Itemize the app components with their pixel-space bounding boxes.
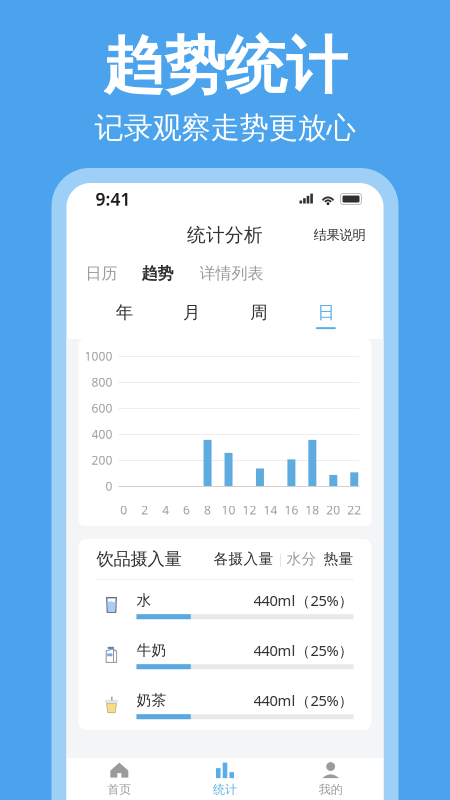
button[interactable]: 月 xyxy=(158,296,225,335)
button[interactable]: 详情列表 xyxy=(199,260,263,287)
staticText: 各摄入量 xyxy=(213,550,273,568)
staticText: 记录观察走势更放心 xyxy=(94,110,355,146)
button[interactable]: 周 xyxy=(225,296,292,335)
staticText: 饮品摄入量 xyxy=(96,548,181,570)
staticText: 2 xyxy=(141,502,148,518)
staticText: 月 xyxy=(183,302,200,323)
staticText: 日 xyxy=(317,302,334,323)
staticText: 4 xyxy=(162,502,169,518)
button[interactable]: 热量 xyxy=(323,550,353,568)
button[interactable]: 奶茶 xyxy=(96,680,353,730)
staticText: 6 xyxy=(183,502,190,518)
button[interactable]: 我的 xyxy=(278,755,383,800)
staticText: 400 xyxy=(91,426,112,442)
staticText: 日历 xyxy=(85,264,117,283)
staticText: 趋势统计 xyxy=(103,28,347,104)
button[interactable]: 水 xyxy=(96,580,353,630)
button[interactable]: 各摄入量 xyxy=(213,550,273,568)
button[interactable]: 首页 xyxy=(66,755,172,800)
staticText: 14 xyxy=(263,502,277,518)
button[interactable]: 水分 xyxy=(286,550,316,568)
button[interactable]: 年 xyxy=(90,296,158,335)
staticText: 16 xyxy=(284,502,298,518)
staticText: 0 xyxy=(120,502,127,518)
staticText: 18 xyxy=(305,502,319,518)
staticText: 详情列表 xyxy=(199,264,263,283)
staticText: 年 xyxy=(116,302,133,323)
staticText: ｜ xyxy=(273,551,286,567)
staticText: 22 xyxy=(347,502,361,518)
staticText: 统计 xyxy=(213,782,237,797)
staticText: 440ml（25%） xyxy=(253,691,353,710)
staticText: 首页 xyxy=(107,782,131,797)
staticText: 趋势 xyxy=(141,264,173,283)
staticText: 440ml（25%） xyxy=(253,591,353,610)
staticText: 600 xyxy=(91,400,112,416)
staticText: 奶茶 xyxy=(136,691,166,709)
staticText: 200 xyxy=(91,452,112,468)
staticText: 1000 xyxy=(84,348,112,364)
staticText: 牛奶 xyxy=(136,641,166,659)
button[interactable]: 趋势 xyxy=(141,260,173,287)
staticText: 440ml（25%） xyxy=(253,641,353,660)
staticText: 9:41 xyxy=(95,187,130,210)
button[interactable]: 统计 xyxy=(172,755,278,800)
staticText: 800 xyxy=(91,374,112,390)
staticText: 结果说明 xyxy=(313,227,365,243)
staticText: 12 xyxy=(242,502,256,518)
staticText: 周 xyxy=(250,302,267,323)
staticText: 0 xyxy=(105,478,112,494)
staticText: 水 xyxy=(136,591,151,609)
staticText: 8 xyxy=(204,502,211,518)
staticText: 20 xyxy=(326,502,340,518)
staticText: 10 xyxy=(221,502,235,518)
staticText: 统计分析 xyxy=(187,223,263,246)
button[interactable]: 日 xyxy=(292,296,359,335)
button[interactable]: 牛奶 xyxy=(96,630,353,680)
button[interactable]: 结果说明 xyxy=(313,222,365,248)
staticText: 水分 xyxy=(286,550,316,568)
staticText: 热量 xyxy=(323,550,353,568)
staticText: 我的 xyxy=(319,782,343,797)
button[interactable]: 日历 xyxy=(85,260,117,287)
